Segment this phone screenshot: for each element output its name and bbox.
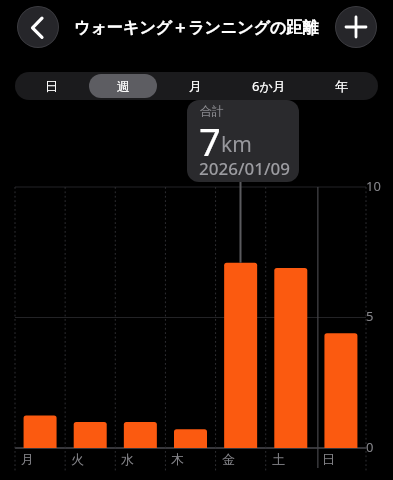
button[interactable]: [17, 6, 59, 48]
button[interactable]: 週: [89, 74, 157, 98]
staticText: 金: [222, 451, 235, 467]
staticText: 日: [45, 78, 58, 94]
staticText: 2026/01/09: [199, 157, 290, 180]
button[interactable]: 日: [17, 74, 85, 98]
staticText: 月: [189, 78, 202, 94]
staticText: 木: [171, 451, 184, 467]
staticText: 週: [117, 78, 130, 94]
button[interactable]: 年: [307, 74, 376, 98]
staticText: 土: [272, 451, 285, 467]
button[interactable]: 6か月: [234, 74, 303, 98]
staticText: 0: [366, 438, 374, 456]
staticText: 7: [199, 115, 221, 167]
staticText: 火: [71, 451, 84, 467]
button[interactable]: 月: [161, 74, 230, 98]
staticText: 日: [322, 451, 335, 467]
staticText: 5: [366, 307, 374, 325]
staticText: 10: [366, 177, 381, 195]
staticText: 月: [21, 451, 34, 467]
staticText: ウォーキング＋ランニングの距離: [74, 18, 319, 38]
staticText: 6か月: [252, 77, 286, 95]
button[interactable]: [335, 6, 377, 48]
staticText: 年: [335, 78, 348, 94]
staticText: 水: [121, 451, 134, 467]
staticText: km: [221, 130, 252, 159]
staticText: 合計: [200, 103, 224, 118]
